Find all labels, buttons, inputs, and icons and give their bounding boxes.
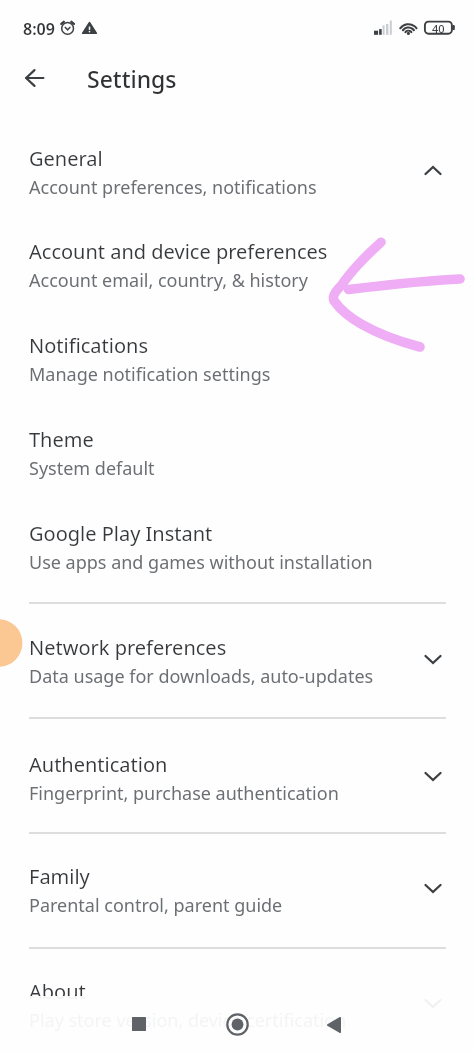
- staticText: Use apps and games without installation: [29, 550, 373, 575]
- button[interactable]: Family: [0, 849, 474, 905]
- staticText: About: [29, 978, 86, 1005]
- button[interactable]: Theme: [0, 412, 474, 468]
- staticText: Authentication: [29, 751, 168, 778]
- button[interactable]: Google Play Instant: [0, 506, 474, 562]
- button[interactable]: Network preferences: [0, 620, 474, 676]
- staticText: Notifications: [29, 332, 148, 359]
- staticText: Account preferences, notifications: [29, 175, 317, 200]
- staticText: Data usage for downloads, auto-updates: [29, 664, 374, 689]
- staticText: Fingerprint, purchase authentication: [29, 781, 339, 806]
- button[interactable]: About: [0, 964, 474, 1020]
- staticText: Google Play Instant: [29, 520, 213, 547]
- button[interactable]: Authentication: [0, 737, 474, 793]
- staticText: Theme: [29, 426, 94, 453]
- button[interactable]: Back: [305, 998, 363, 1051]
- button[interactable]: Recent apps: [110, 997, 168, 1050]
- staticText: Manage notification settings: [29, 362, 271, 387]
- button[interactable]: General: [0, 131, 474, 187]
- button[interactable]: Back: [14, 58, 54, 98]
- staticText: Network preferences: [29, 634, 227, 661]
- staticText: System default: [29, 456, 155, 481]
- staticText: Account email, country, & history: [29, 268, 308, 293]
- staticText: Settings: [87, 63, 177, 94]
- staticText: 40: [432, 21, 445, 34]
- staticText: Parental control, parent guide: [29, 893, 283, 918]
- button[interactable]: Notifications: [0, 318, 474, 374]
- staticText: 8:09: [23, 18, 55, 40]
- staticText: Play store version, device certification: [29, 1008, 347, 1033]
- staticText: General: [29, 145, 103, 172]
- staticText: Family: [29, 863, 90, 890]
- button[interactable]: Home: [208, 998, 266, 1051]
- button[interactable]: Account and device preferences: [0, 224, 474, 280]
- staticText: Account and device preferences: [29, 238, 328, 265]
